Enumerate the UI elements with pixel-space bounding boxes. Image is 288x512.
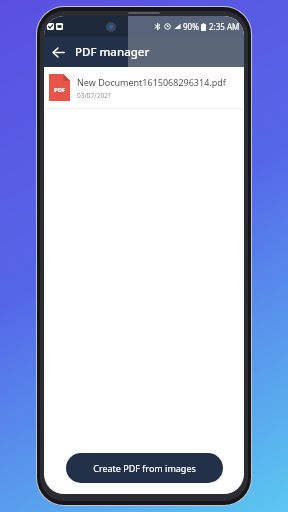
staticText: PDF (54, 86, 66, 94)
staticText: New Document1615068296314.pdf (77, 76, 226, 88)
staticText: Create PDF from images (93, 462, 196, 474)
button[interactable]: Back (47, 41, 69, 63)
staticText: 90% (183, 21, 199, 32)
staticText: 2:35 AM (209, 21, 240, 32)
button[interactable]: PDF (44, 67, 244, 108)
staticText: PDF manager (75, 44, 150, 60)
staticText: 03/07/2021 (77, 91, 112, 100)
button[interactable]: Create PDF from images (66, 453, 223, 483)
